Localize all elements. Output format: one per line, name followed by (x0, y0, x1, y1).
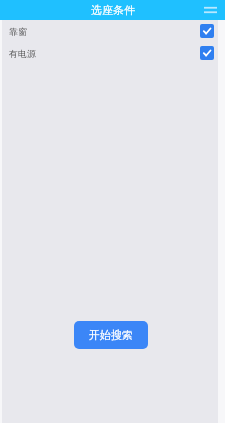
button[interactable]: 靠窗 (2, 20, 218, 42)
button[interactable]: 有电源 (2, 42, 218, 64)
staticText: 开始搜索 (89, 328, 133, 342)
button[interactable]: Menu (202, 2, 218, 18)
button[interactable]: 开始搜索 (74, 321, 148, 349)
staticText: 选座条件 (91, 3, 135, 17)
staticText: 有电源 (9, 48, 36, 59)
staticText: 靠窗 (9, 26, 27, 37)
